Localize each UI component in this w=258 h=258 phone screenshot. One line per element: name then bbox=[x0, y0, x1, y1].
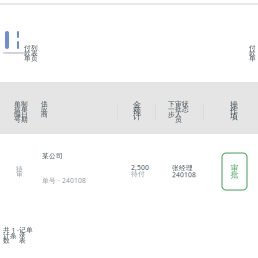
staticText: 单号 · 240108 bbox=[42, 176, 86, 185]
staticText: 审 bbox=[16, 170, 23, 178]
staticText: 240108 bbox=[172, 170, 196, 179]
staticText: 表 bbox=[19, 236, 26, 245]
staticText: 待付 bbox=[131, 170, 145, 178]
staticText: 制 bbox=[21, 100, 28, 108]
staticText: 录 bbox=[19, 231, 26, 239]
staticText: 记 bbox=[19, 226, 26, 234]
button[interactable]: 审 bbox=[222, 153, 247, 190]
staticText: 据 bbox=[14, 105, 21, 113]
staticText: 1 bbox=[11, 226, 15, 235]
staticText: 作 bbox=[230, 106, 238, 116]
staticText: 页 bbox=[31, 54, 38, 63]
staticText: 人 bbox=[175, 110, 182, 119]
staticText: 一 bbox=[168, 105, 175, 113]
staticText: 条 bbox=[10, 232, 17, 240]
staticText: 待 bbox=[16, 165, 23, 173]
staticText: 数 bbox=[3, 236, 10, 245]
staticText: 状 bbox=[182, 100, 189, 108]
staticText: 项 bbox=[230, 112, 238, 121]
staticText: 期 bbox=[21, 116, 28, 124]
staticText: 额 bbox=[133, 106, 141, 116]
staticText: 下 bbox=[168, 100, 175, 108]
staticText: 款 bbox=[249, 49, 256, 57]
staticText: 单 bbox=[14, 100, 21, 108]
staticText: 单 bbox=[249, 54, 256, 63]
staticText: 付 bbox=[24, 44, 31, 52]
staticText: 金 bbox=[133, 100, 141, 110]
staticText: 商 bbox=[41, 110, 48, 119]
staticText: 批 bbox=[230, 170, 238, 180]
staticText: 审 bbox=[230, 163, 238, 173]
staticText: 计 bbox=[3, 231, 10, 239]
staticText: 员 bbox=[175, 116, 182, 124]
staticText: 日 bbox=[21, 110, 28, 119]
staticText: 单 bbox=[24, 54, 31, 63]
staticText: 号 bbox=[14, 116, 21, 124]
staticText: 张经理 bbox=[172, 164, 193, 172]
staticText: 款 bbox=[24, 49, 31, 57]
staticText: 步 bbox=[168, 110, 175, 119]
staticText: 表 bbox=[31, 49, 38, 57]
staticText: 付 bbox=[249, 44, 256, 52]
staticText: 审 bbox=[175, 100, 182, 108]
staticText: 列 bbox=[31, 44, 38, 52]
staticText: 编 bbox=[14, 110, 21, 119]
staticText: 某公司 bbox=[42, 152, 63, 160]
staticText: 2,500 bbox=[131, 163, 149, 172]
staticText: 共 bbox=[3, 226, 10, 234]
staticText: 应 bbox=[41, 105, 48, 113]
staticText: 单 bbox=[21, 105, 28, 113]
staticText: · bbox=[17, 226, 19, 235]
staticText: 计 bbox=[133, 112, 141, 121]
staticText: 态 bbox=[182, 105, 189, 113]
staticText: 批 bbox=[175, 105, 182, 113]
staticText: 供 bbox=[41, 100, 48, 108]
staticText: 单 bbox=[26, 226, 33, 234]
staticText: 操 bbox=[230, 100, 238, 110]
